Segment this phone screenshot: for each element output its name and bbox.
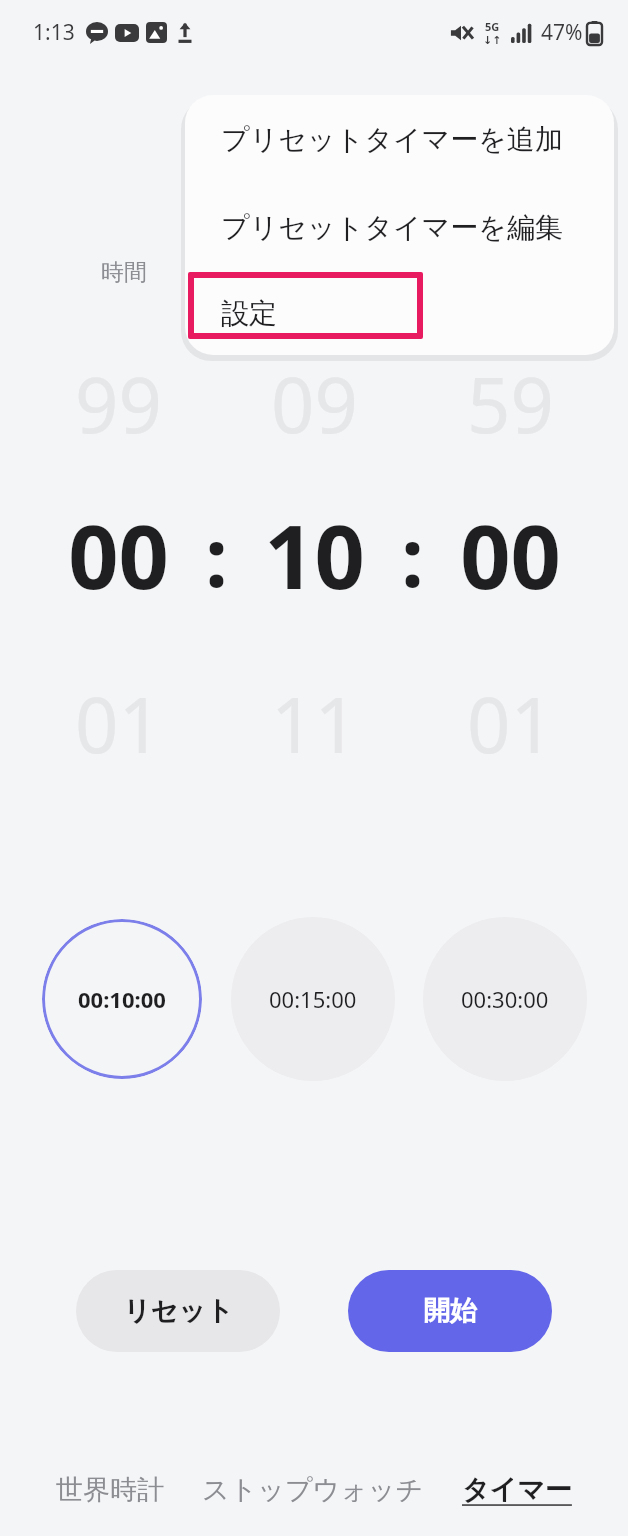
button[interactable]: 00	[0, 495, 628, 615]
staticText: リセット	[123, 1294, 234, 1328]
staticText: ストップウォッチ	[202, 1473, 424, 1507]
staticText: 世界時計	[56, 1473, 164, 1507]
staticText: 11	[271, 672, 358, 776]
button[interactable]: 00:15:00	[231, 917, 395, 1081]
staticText: 10	[264, 495, 365, 615]
button[interactable]: 設定	[185, 271, 614, 355]
staticText: タイマー	[462, 1473, 572, 1507]
staticText: プリセットタイマーを追加	[221, 122, 563, 157]
staticText: 01	[467, 672, 554, 776]
staticText: 00	[68, 495, 169, 615]
staticText: 00:10:00	[78, 984, 166, 1014]
button[interactable]: プリセットタイマーを編集	[185, 183, 614, 271]
button[interactable]: 世界時計	[42, 1463, 178, 1517]
staticText: 00	[460, 495, 561, 615]
staticText: 00:15:00	[269, 984, 357, 1014]
staticText: 設定	[221, 296, 277, 331]
button[interactable]: 00:10:00	[42, 919, 202, 1079]
staticText: ↓↑	[483, 34, 502, 47]
staticText: 1:13	[33, 18, 75, 47]
staticText: 01	[75, 672, 162, 776]
button[interactable]: 00:30:00	[423, 917, 587, 1081]
staticText: プリセットタイマーを編集	[221, 210, 563, 245]
staticText: 5G	[485, 19, 500, 34]
button[interactable]: リセット	[76, 1270, 280, 1352]
button[interactable]: プリセットタイマーを追加	[185, 95, 614, 183]
button[interactable]: ストップウォッチ	[188, 1463, 438, 1517]
staticText: 59	[467, 352, 554, 456]
staticText: 開始	[423, 1294, 477, 1328]
staticText: 00:30:00	[461, 984, 549, 1014]
staticText: 47%	[541, 18, 583, 47]
staticText: 時間	[101, 258, 147, 287]
button[interactable]: タイマー	[448, 1463, 586, 1517]
staticText: 09	[271, 352, 358, 456]
button[interactable]: 開始	[348, 1270, 552, 1352]
staticText: 99	[75, 352, 162, 456]
staticText: :	[401, 501, 424, 610]
staticText: :	[205, 501, 228, 610]
